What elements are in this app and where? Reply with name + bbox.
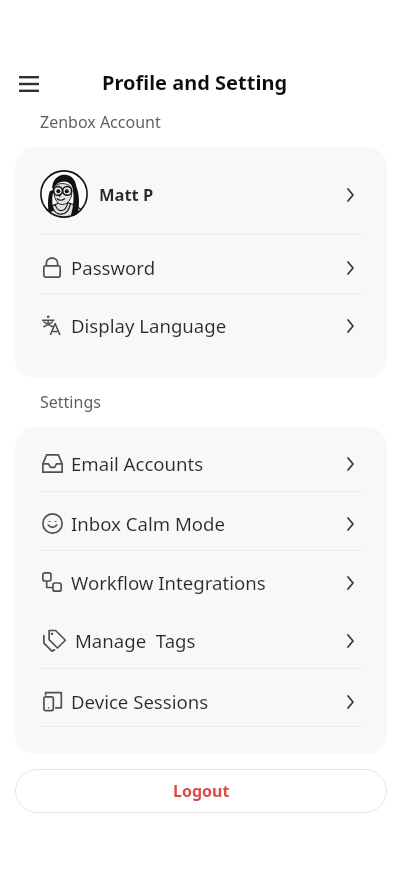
staticText: Inbox Calm Mode — [71, 511, 226, 536]
button[interactable]: Inbox Calm Mode — [15, 499, 387, 547]
button[interactable]: Device Sessions — [15, 677, 387, 725]
staticText: Email Accounts — [71, 451, 204, 476]
button[interactable]: Password — [15, 243, 387, 291]
staticText: Profile and Setting — [102, 69, 288, 96]
button[interactable]: Workflow Integrations — [15, 558, 387, 606]
button[interactable]: Email Accounts — [15, 439, 387, 487]
staticText: Zenbox Account — [40, 111, 161, 133]
staticText: Device Sessions — [71, 689, 209, 714]
button[interactable]: Logout — [15, 769, 387, 813]
staticText: Matt P — [99, 183, 154, 205]
button[interactable]: Display Language — [15, 301, 387, 349]
button[interactable]: Manage Tags — [15, 616, 387, 664]
staticText: Logout — [173, 780, 230, 802]
staticText: Workflow Integrations — [71, 570, 266, 595]
button[interactable]: Matt P — [15, 169, 387, 219]
staticText: Manage Tags — [75, 628, 196, 653]
button[interactable]: Menu — [7, 62, 51, 106]
staticText: Display Language — [71, 313, 227, 338]
staticText: Settings — [40, 391, 101, 413]
staticText: Password — [71, 255, 156, 280]
